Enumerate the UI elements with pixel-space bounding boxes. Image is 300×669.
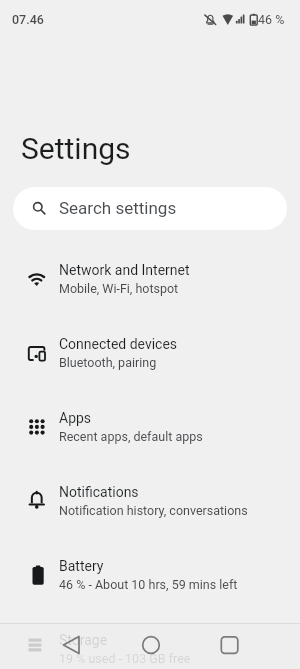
staticText: Storage (59, 632, 108, 648)
staticText: 46 % - About 10 hrs, 59 mins left (59, 577, 238, 592)
staticText: Apps (59, 410, 92, 426)
staticText: Bluetooth, pairing (59, 355, 157, 370)
staticText: Settings (21, 131, 131, 166)
staticText: Notification history, conversations (59, 503, 248, 518)
staticText: 19 % used - 103 GB free (59, 651, 191, 666)
staticText: Network and Internet (59, 262, 190, 278)
staticText: Mobile, Wi-Fi, hotspot (59, 281, 179, 296)
staticText: 46 % (258, 12, 285, 27)
staticText: Recent apps, default apps (59, 429, 203, 444)
staticText: Search settings (59, 198, 177, 218)
staticText: Connected devices (59, 336, 178, 352)
staticText: Notifications (59, 484, 139, 500)
staticText: 07.46 (12, 12, 44, 27)
staticText: Battery (59, 558, 104, 574)
